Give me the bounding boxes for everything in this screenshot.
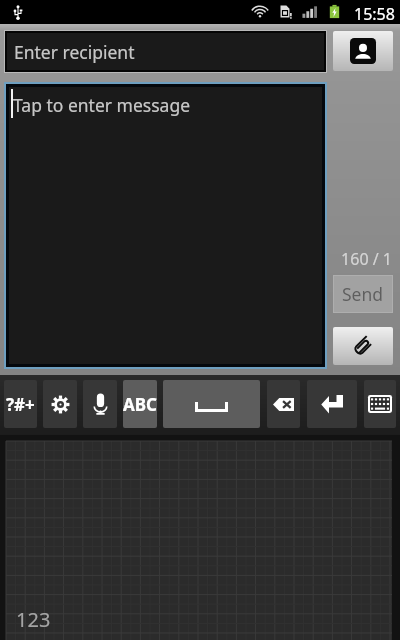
button[interactable]: ABC (123, 380, 157, 428)
button[interactable]: Settings (43, 380, 77, 428)
button[interactable]: Handwriting area (6, 441, 392, 640)
button[interactable]: Tap to enter message (9, 87, 322, 364)
button[interactable]: Enter (307, 380, 357, 428)
button[interactable]: Choose contact (333, 31, 393, 71)
staticText: Enter recipient (14, 40, 135, 64)
button[interactable]: Delete (267, 380, 300, 428)
staticText: Send (342, 282, 384, 306)
staticText: ABC (123, 393, 157, 416)
staticText: 123 (16, 606, 51, 633)
button[interactable]: Voice input (83, 380, 117, 428)
staticText: 15:58 (354, 3, 395, 25)
staticText: ?#+ (6, 393, 35, 416)
button[interactable]: Space (163, 380, 260, 428)
button[interactable]: Symbols (4, 380, 37, 428)
staticText: 160 / 1 (327, 248, 392, 270)
button[interactable]: Keyboard (364, 380, 396, 428)
staticText: Tap to enter message (13, 93, 191, 117)
button[interactable]: Enter recipient (7, 33, 324, 70)
button[interactable]: Send (334, 276, 392, 312)
button[interactable]: Attach (333, 327, 393, 365)
